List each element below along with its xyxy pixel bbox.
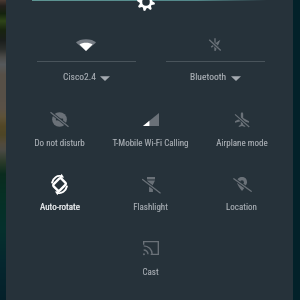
staticText: Do not disturb: [34, 138, 85, 149]
button[interactable]: Auto-rotate: [14, 170, 105, 215]
staticText: Location: [226, 202, 257, 213]
staticText: T-Mobile Wi-Fi Calling: [112, 138, 189, 149]
button[interactable]: Airplane mode: [196, 105, 287, 150]
button[interactable]: Cisco2.4: [22, 30, 150, 86]
staticText: Bluetooth: [190, 71, 227, 82]
button[interactable]: Location: [196, 170, 287, 215]
button[interactable]: Flashlight: [105, 170, 196, 215]
staticText: Cisco2.4: [63, 71, 96, 82]
button[interactable]: Do not disturb: [14, 105, 105, 150]
button[interactable]: Bluetooth: [151, 30, 279, 86]
staticText: Airplane mode: [216, 138, 268, 149]
button[interactable]: T-Mobile Wi-Fi Calling: [105, 105, 196, 150]
staticText: Flashlight: [133, 202, 168, 213]
button[interactable]: Cast: [105, 234, 196, 279]
staticText: Auto-rotate: [40, 202, 80, 213]
button[interactable]: Settings: [137, 0, 155, 11]
staticText: Cast: [142, 267, 159, 278]
